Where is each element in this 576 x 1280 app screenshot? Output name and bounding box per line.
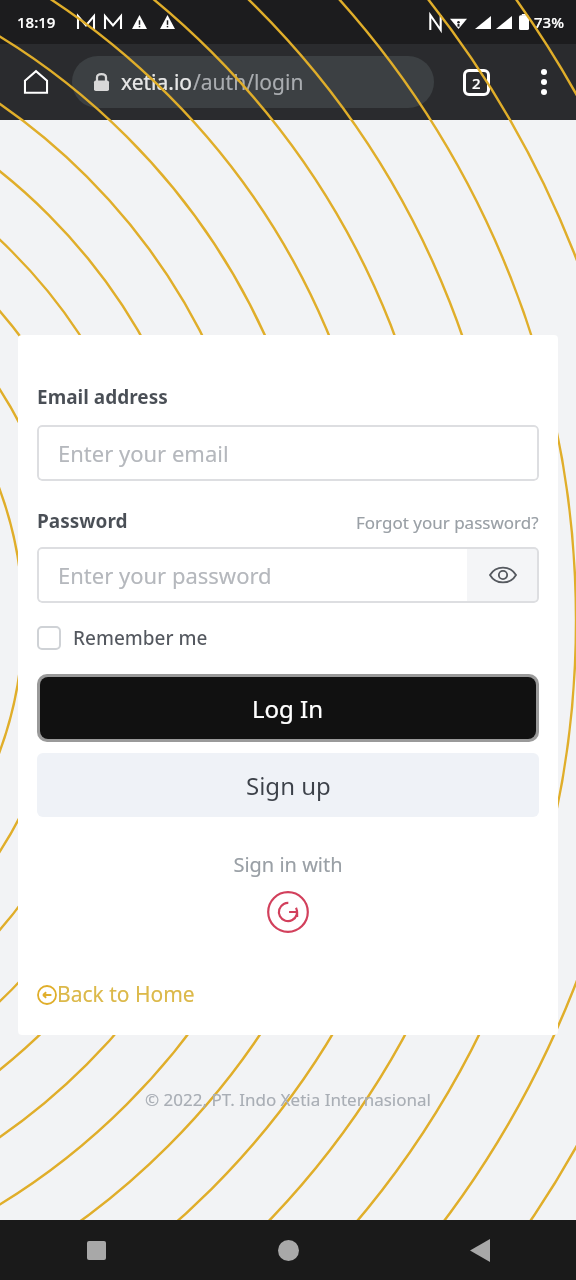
- staticText: Remember me: [73, 625, 208, 651]
- staticText: Forgot your password?: [356, 511, 539, 534]
- staticText: xetia.io: [121, 68, 193, 97]
- button[interactable]: Back: [384, 1220, 576, 1280]
- button[interactable]: Enter your password: [37, 547, 467, 603]
- staticText: Enter your password: [58, 560, 272, 590]
- staticText: Enter your email: [58, 438, 229, 468]
- button[interactable]: Back to Home: [37, 980, 195, 1009]
- button[interactable]: Log In: [40, 677, 536, 739]
- staticText: 18:19: [17, 12, 56, 32]
- button[interactable]: Recent apps: [0, 1220, 192, 1280]
- staticText: 2: [472, 73, 481, 93]
- staticText: Log In: [252, 692, 324, 725]
- button[interactable]: Remember me: [37, 625, 208, 651]
- button[interactable]: xetia.io: [72, 56, 434, 108]
- staticText: Password: [37, 508, 128, 534]
- staticText: 73%: [534, 12, 564, 32]
- staticText: Sign up: [246, 769, 331, 802]
- staticText: Back to Home: [57, 980, 195, 1009]
- staticText: Sign in with: [37, 851, 539, 878]
- staticText: © 2022, PT. Indo Xetia Internasional: [0, 1088, 576, 1111]
- staticText: Email address: [37, 384, 168, 410]
- button[interactable]: Sign up: [37, 753, 539, 817]
- button[interactable]: Show password: [467, 547, 539, 603]
- button[interactable]: Enter your email: [37, 425, 539, 481]
- staticText: /auth/login: [193, 68, 304, 97]
- button[interactable]: Sign in with Google: [266, 890, 310, 934]
- button[interactable]: More options: [522, 60, 566, 104]
- button[interactable]: Home: [192, 1220, 384, 1280]
- button[interactable]: Forgot your password?: [356, 511, 539, 534]
- button[interactable]: Tabs: 2 open: [452, 58, 500, 106]
- button[interactable]: Home: [14, 60, 58, 104]
